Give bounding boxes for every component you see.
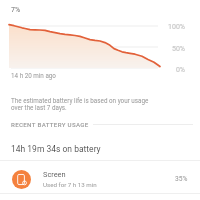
staticText: 7%	[11, 6, 21, 14]
staticText: Used for 7 h 13 min	[43, 181, 97, 188]
staticText: RECENT BATTERY USAGE	[11, 121, 89, 128]
staticText: Screen	[43, 170, 66, 179]
staticText: 50%	[155, 45, 185, 53]
other: Screen battery usage	[12, 170, 31, 189]
staticText: 100%	[155, 23, 185, 31]
button[interactable]: Screen battery usage	[0, 161, 200, 197]
staticText: 0%	[155, 66, 185, 74]
staticText: 14h 19m 34s on battery	[11, 144, 101, 154]
staticText: The estimated battery life is based on y…	[11, 97, 149, 111]
staticText: 14 h 20 min ago	[11, 72, 56, 79]
staticText: 35%	[175, 175, 188, 183]
